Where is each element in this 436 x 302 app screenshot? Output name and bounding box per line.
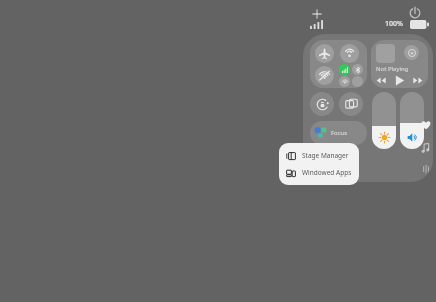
button[interactable]: Windowed Apps — [279, 164, 359, 181]
button[interactable]: Personal Hotspot — [339, 76, 350, 87]
button[interactable]: Hearing Aids — [420, 163, 432, 175]
button[interactable]: Focus — [310, 121, 367, 145]
other: Power — [408, 6, 422, 20]
button[interactable]: Stage Manager — [279, 147, 359, 164]
button[interactable]: Rotation Lock — [310, 92, 334, 116]
button[interactable]: Music Recognition — [420, 142, 432, 154]
button[interactable]: AirDrop — [340, 44, 359, 63]
button[interactable]: AirPlay — [404, 45, 419, 60]
button[interactable]: Next — [412, 75, 423, 86]
staticText: Not Playing — [376, 65, 409, 73]
button[interactable]: Airplane Mode — [315, 44, 334, 63]
button[interactable]: Previous — [376, 75, 387, 86]
button[interactable]: VPN — [352, 76, 363, 87]
staticText: Focus — [331, 129, 348, 137]
other: Add — [310, 7, 324, 21]
staticText: 100% — [385, 19, 403, 29]
button[interactable]: Wi-Fi — [315, 66, 334, 85]
button[interactable]: Volume — [400, 92, 424, 149]
button[interactable]: Brightness — [372, 92, 396, 149]
button[interactable]: Bluetooth — [352, 64, 363, 75]
button[interactable]: Play — [393, 74, 406, 87]
staticText: Stage Manager — [302, 151, 349, 160]
button[interactable]: Screen Mirroring — [339, 92, 363, 116]
staticText: Windowed Apps — [302, 168, 352, 177]
button[interactable] — [376, 44, 395, 63]
button[interactable]: Cellular Data — [339, 64, 350, 75]
button[interactable]: Hearing — [420, 119, 432, 131]
